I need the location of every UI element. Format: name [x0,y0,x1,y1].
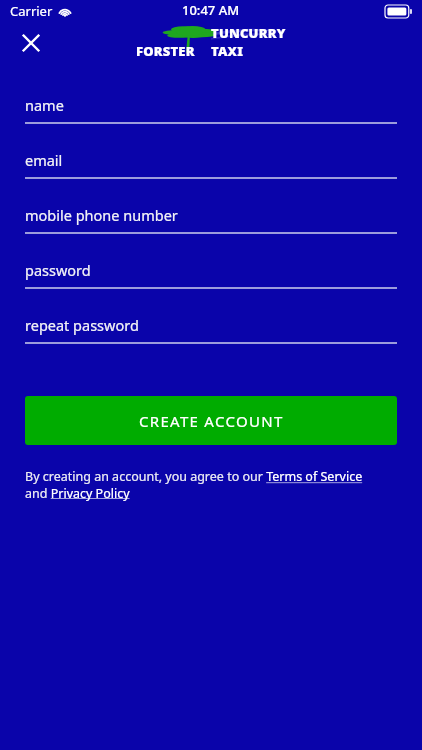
staticText: password [25,260,91,280]
button[interactable]: CREATE ACCOUNT [25,396,397,445]
staticText: CREATE ACCOUNT [139,411,284,431]
button[interactable]: mobile phone number [25,198,397,253]
staticText: mobile phone number [25,205,178,225]
button[interactable]: By creating an account, you agree to our… [25,468,397,501]
button[interactable]: Close [13,25,49,61]
staticText: By creating an account, you agree to our… [25,468,363,501]
staticText: name [25,95,64,115]
staticText: FORSTER [136,42,195,60]
button[interactable]: email [25,143,397,198]
button[interactable]: password [25,253,397,308]
staticText: Carrier [10,2,53,20]
staticText: repeat password [25,315,139,335]
staticText: TUNCURRY TAXI [211,24,286,60]
staticText: 10:47 AM [182,1,240,19]
button[interactable]: repeat password [25,308,397,363]
button[interactable]: name [25,88,397,143]
staticText: email [25,150,63,170]
